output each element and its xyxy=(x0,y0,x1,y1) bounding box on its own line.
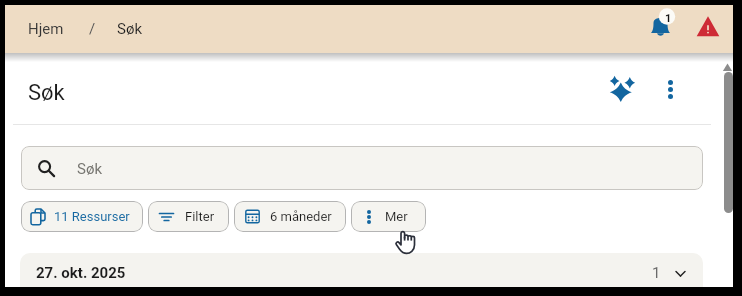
button[interactable]: Søk xyxy=(21,146,703,190)
staticText: Søk xyxy=(117,20,143,38)
staticText: Søk xyxy=(28,80,65,106)
button[interactable]: 27. okt. 2025 xyxy=(20,253,703,287)
button[interactable]: AI-assistent xyxy=(599,73,639,113)
staticText: 1 xyxy=(665,12,672,25)
staticText: Mer xyxy=(385,209,408,224)
button[interactable]: Advarsel xyxy=(688,9,728,49)
button[interactable]: 6 måneder xyxy=(234,201,346,232)
staticText: Hjem xyxy=(28,20,64,38)
staticText: 6 måneder xyxy=(270,209,332,224)
staticText: / xyxy=(89,20,96,38)
button[interactable]: Flere valg xyxy=(652,75,688,111)
staticText: 27. okt. 2025 xyxy=(36,264,126,282)
button[interactable]: 11 Ressurser xyxy=(21,201,143,232)
button[interactable]: Filter xyxy=(148,201,229,232)
staticText: Filter xyxy=(185,209,215,224)
button[interactable]: Mer xyxy=(351,201,426,232)
staticText: Søk xyxy=(77,160,103,178)
staticText: 11 Ressurser xyxy=(54,209,130,224)
staticText: 1 xyxy=(652,264,661,282)
button[interactable]: Varsler xyxy=(641,9,681,49)
button[interactable]: Hjem xyxy=(26,16,66,42)
